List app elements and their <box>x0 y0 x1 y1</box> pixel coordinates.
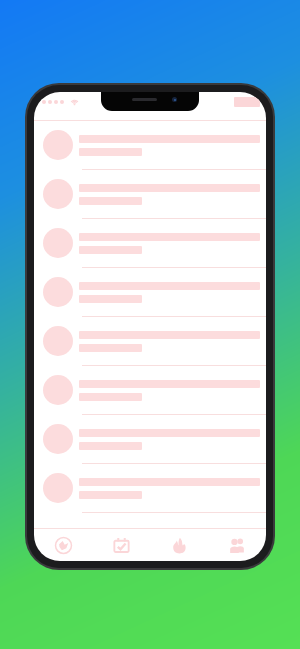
button[interactable]: Trending <box>150 529 208 561</box>
button[interactable] <box>34 464 266 513</box>
button[interactable] <box>34 366 266 415</box>
button[interactable]: World <box>34 529 92 561</box>
button[interactable] <box>34 317 266 366</box>
button[interactable]: People <box>208 529 266 561</box>
button[interactable] <box>34 219 266 268</box>
button[interactable] <box>34 121 266 170</box>
button[interactable] <box>34 170 266 219</box>
button[interactable] <box>34 268 266 317</box>
button[interactable] <box>34 415 266 464</box>
button[interactable]: Schedule <box>92 529 150 561</box>
